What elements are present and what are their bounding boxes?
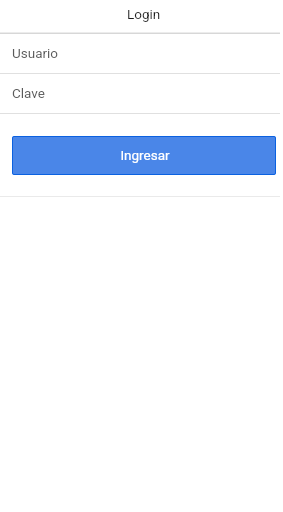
button[interactable]: Clave [0,74,280,113]
staticText: Usuario [12,45,59,61]
staticText: Login [127,6,161,22]
button[interactable]: Ingresar [12,136,276,175]
staticText: Clave [12,85,45,101]
staticText: Ingresar [120,147,170,163]
button[interactable]: Usuario [0,34,280,73]
